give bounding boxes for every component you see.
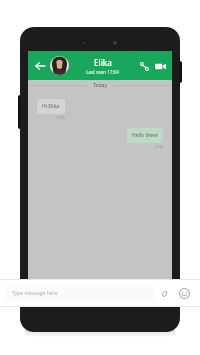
button[interactable]: Attach file [154,283,174,303]
button[interactable]: Hello there [127,128,163,143]
button[interactable]: Contact photo [50,56,69,75]
button[interactable]: Video call [152,58,168,74]
staticText: Last seen 17:04 [86,69,119,75]
staticText: Today [93,82,108,89]
button[interactable]: Hi Elika [37,99,65,114]
button[interactable]: Type message here [6,285,154,301]
staticText: 17:04 [154,144,163,149]
button[interactable]: Emoji [174,283,194,303]
staticText: Hello there [132,132,158,139]
staticText: Hi Elika [42,103,60,110]
staticText: 17:02 [56,115,65,120]
staticText: Elika [94,57,112,68]
button[interactable]: Voice call [136,58,152,74]
staticText: Type message here [12,290,58,297]
button[interactable]: Back [32,58,48,74]
